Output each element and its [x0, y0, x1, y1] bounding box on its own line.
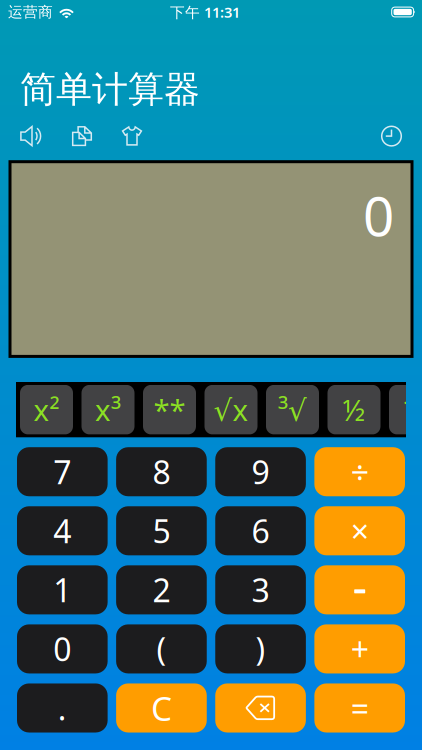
button[interactable]: History	[381, 126, 402, 147]
button[interactable]: .	[17, 683, 108, 732]
staticText: x²	[33, 390, 59, 429]
button[interactable]: 9	[215, 447, 306, 496]
staticText: 下午 11:31	[170, 2, 240, 22]
staticText: 0	[53, 628, 71, 670]
staticText: C	[151, 686, 172, 730]
staticText: 7	[53, 450, 71, 493]
staticText: 1	[53, 569, 71, 611]
staticText: 2	[152, 569, 170, 611]
staticText: 4	[53, 509, 71, 552]
button[interactable]: ÷	[314, 447, 405, 496]
button[interactable]: Sound	[20, 125, 41, 147]
staticText: (	[156, 628, 166, 670]
button[interactable]: =	[314, 683, 405, 732]
button[interactable]: ⅓	[389, 385, 422, 434]
button[interactable]: 6	[215, 506, 306, 555]
button[interactable]: 8	[116, 447, 207, 496]
staticText: )	[256, 628, 266, 670]
button[interactable]: 0	[17, 624, 108, 673]
button[interactable]: ½	[327, 385, 380, 434]
staticText: 8	[152, 450, 170, 493]
staticText: 简单计算器	[20, 67, 200, 112]
button[interactable]: ×	[314, 506, 405, 555]
button[interactable]: Copy	[71, 126, 92, 147]
staticText: ½	[342, 390, 365, 429]
staticText: 5	[152, 509, 170, 552]
button[interactable]: x²	[20, 385, 73, 434]
staticText: 3	[252, 569, 270, 611]
button[interactable]: C	[116, 683, 207, 732]
button[interactable]: 1	[17, 565, 108, 614]
staticText: ³√	[278, 390, 307, 429]
button[interactable]: √x	[204, 385, 257, 434]
staticText: **	[153, 390, 185, 429]
button[interactable]: Delete	[215, 683, 306, 732]
staticText: ×	[351, 509, 369, 552]
button[interactable]: Minus	[314, 565, 405, 614]
button[interactable]: 7	[17, 447, 108, 496]
staticText: +	[351, 628, 369, 670]
button[interactable]: x³	[81, 385, 134, 434]
button[interactable]: )	[215, 624, 306, 673]
staticText: x³	[95, 390, 121, 429]
button[interactable]: (	[116, 624, 207, 673]
button[interactable]: **	[143, 385, 196, 434]
staticText: 运营商	[8, 3, 53, 21]
staticText: ÷	[351, 450, 369, 493]
button[interactable]: 2	[116, 565, 207, 614]
staticText: .	[58, 687, 67, 729]
staticText: =	[351, 687, 369, 729]
button[interactable]: 3	[215, 565, 306, 614]
button[interactable]: 5	[116, 506, 207, 555]
staticText: 0	[363, 179, 394, 251]
staticText: 9	[252, 450, 270, 493]
staticText: √x	[213, 390, 248, 429]
button[interactable]: Theme	[121, 126, 142, 147]
button[interactable]: 4	[17, 506, 108, 555]
button[interactable]: +	[314, 624, 405, 673]
button[interactable]: ³√	[266, 385, 319, 434]
staticText: ⅓	[403, 390, 422, 429]
staticText: 6	[252, 509, 270, 552]
